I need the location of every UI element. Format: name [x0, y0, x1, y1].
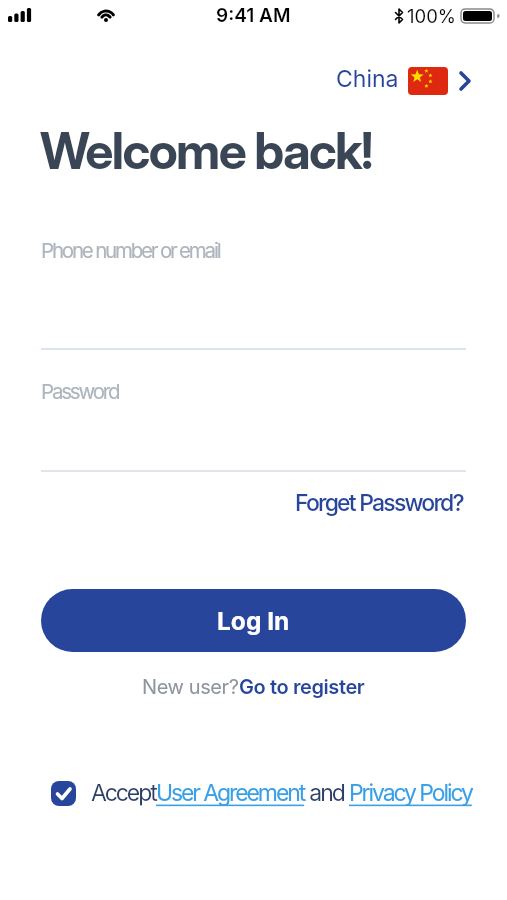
- staticText: Welcome back!: [40, 121, 372, 181]
- button[interactable]: [51, 781, 76, 806]
- staticText: 9:41 AM: [216, 4, 291, 27]
- staticText: Password: [41, 379, 119, 404]
- button[interactable]: China: [336, 67, 471, 95]
- staticText: New user?: [142, 675, 239, 699]
- staticText: China: [336, 65, 399, 93]
- staticText: Log In: [217, 606, 290, 636]
- button[interactable]: Forget Password?: [295, 489, 463, 517]
- button[interactable]: Log In: [41, 589, 466, 652]
- button[interactable]: Go to register: [239, 675, 365, 699]
- staticText: and: [305, 779, 349, 807]
- staticText: Accept: [91, 779, 156, 807]
- staticText: 100%: [407, 5, 457, 27]
- button[interactable]: Privacy Policy: [349, 779, 472, 807]
- staticText: Phone number or email: [41, 238, 220, 263]
- button[interactable]: User Agreement: [156, 779, 305, 807]
